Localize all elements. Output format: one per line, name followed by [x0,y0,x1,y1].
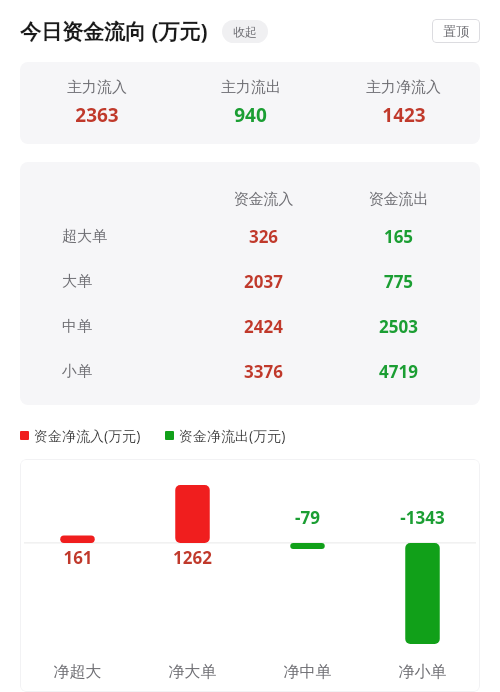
staticText: 161 [63,546,93,569]
staticText: 资金净流入(万元) [34,426,141,445]
staticText: 资金净流出(万元) [179,426,286,445]
button[interactable]: 小单 [20,349,480,394]
staticText: 326 [196,225,331,248]
staticText: 2503 [331,315,466,338]
staticText: 净中单 [250,662,365,682]
staticText: -79 [295,506,320,529]
staticText: 资金流入 [196,190,331,209]
button[interactable]: 资金流入 [20,162,480,405]
staticText: 收起 [233,24,257,39]
staticText: 2424 [196,315,331,338]
button[interactable]: 收起 [222,20,268,43]
staticText: 2037 [196,270,331,293]
staticText: 中单 [62,317,92,336]
staticText: 大单 [62,272,92,291]
staticText: 940 [234,102,267,128]
staticText: 1262 [173,546,212,569]
staticText: 2363 [75,102,119,128]
staticText: 今日资金流向 (万元) [20,17,208,46]
staticText: 小单 [62,362,92,381]
staticText: 165 [331,225,466,248]
staticText: 净超大 [20,662,135,682]
staticText: 主力流出 [221,78,281,97]
button[interactable]: 超大单 [20,214,480,259]
staticText: 资金流出 [331,190,466,209]
staticText: 超大单 [62,227,107,246]
button[interactable]: 大单 [20,259,480,304]
staticText: 主力净流入 [366,78,441,97]
staticText: 4719 [331,360,466,383]
staticText: 净大单 [135,662,250,682]
staticText: 1423 [382,102,426,128]
staticText: 3376 [196,360,331,383]
button[interactable]: 主力流入 [20,62,480,144]
staticText: 净小单 [365,662,480,682]
staticText: 置顶 [443,23,469,39]
staticText: 775 [331,270,466,293]
button[interactable]: 置顶 [432,19,480,43]
staticText: -1343 [400,506,445,529]
button[interactable]: 中单 [20,304,480,349]
staticText: 主力流入 [67,78,127,97]
